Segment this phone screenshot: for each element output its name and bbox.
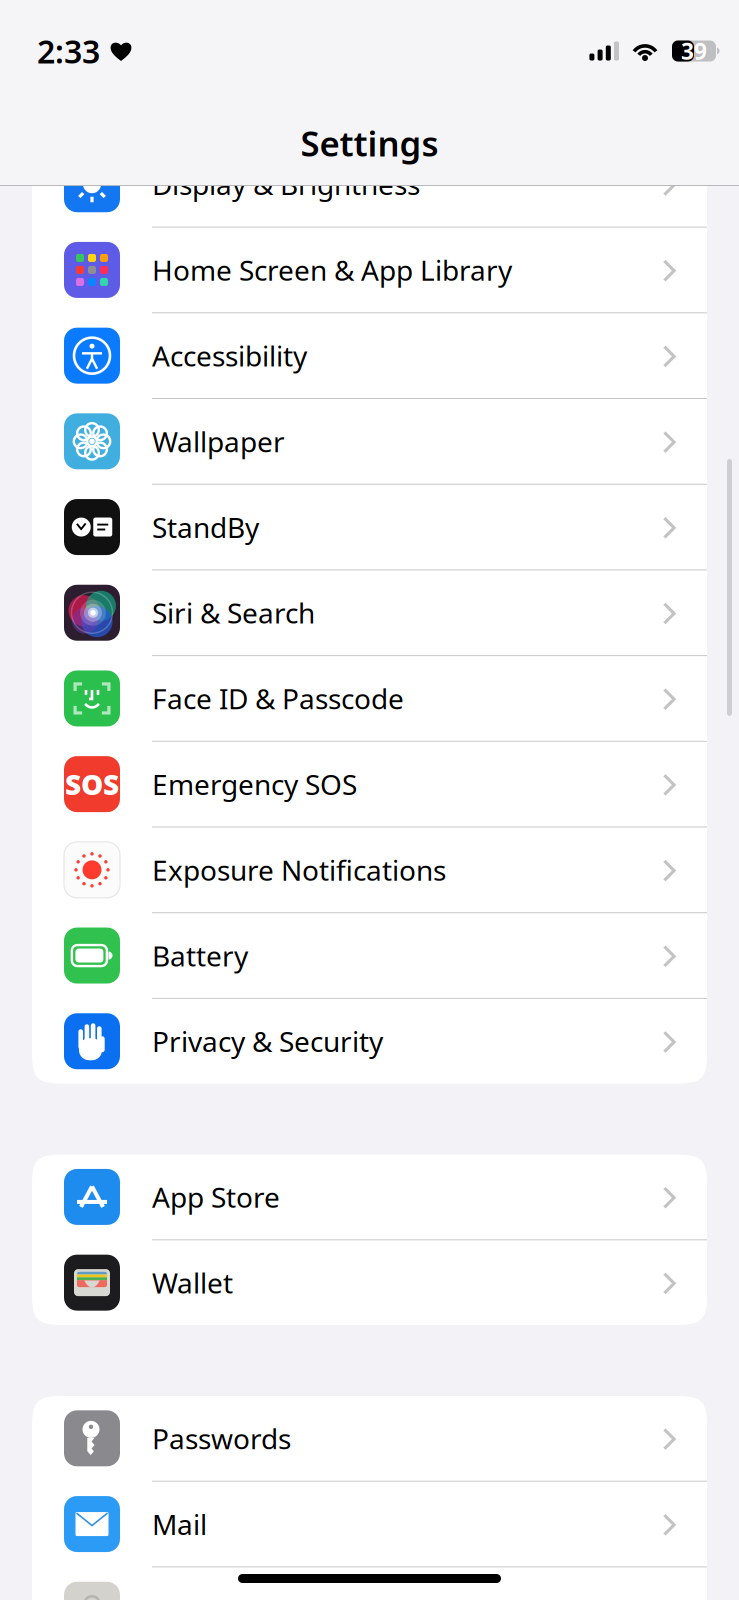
button[interactable]: Passwords bbox=[32, 1396, 707, 1481]
staticText: Home Screen & App Library bbox=[152, 251, 512, 289]
button[interactable]: Siri & Search bbox=[32, 570, 707, 655]
staticText: Siri & Search bbox=[152, 594, 315, 631]
staticText: Display & Brightness bbox=[152, 166, 420, 203]
button[interactable]: Wallet bbox=[32, 1240, 707, 1325]
staticText: Emergency SOS bbox=[152, 766, 357, 803]
staticText: 39 bbox=[681, 36, 707, 66]
button[interactable]: Face ID & Passcode bbox=[32, 656, 707, 741]
button[interactable]: Wallpaper bbox=[32, 399, 707, 484]
button[interactable]: Exposure Notifications bbox=[32, 827, 707, 912]
staticText: Mail bbox=[152, 1505, 207, 1543]
staticText: 2:33 bbox=[37, 30, 100, 72]
button[interactable]: StandBy bbox=[32, 485, 707, 569]
button[interactable]: Home Screen & App Library bbox=[32, 228, 707, 312]
staticText: Wallpaper bbox=[152, 423, 285, 460]
staticText: App Store bbox=[152, 1178, 280, 1216]
button[interactable]: SOS bbox=[32, 742, 707, 826]
staticText: Face ID & Passcode bbox=[152, 680, 404, 717]
button[interactable]: Contacts bbox=[32, 1567, 707, 1600]
staticText: Battery bbox=[152, 937, 248, 974]
staticText: Wallet bbox=[152, 1264, 233, 1301]
staticText: SOS bbox=[65, 766, 119, 803]
staticText: Settings bbox=[300, 120, 438, 166]
button[interactable]: Display & Brightness bbox=[32, 142, 707, 227]
button[interactable]: Privacy & Security bbox=[32, 999, 707, 1084]
staticText: Privacy & Security bbox=[152, 1023, 383, 1060]
button[interactable]: App Store bbox=[32, 1155, 707, 1239]
button[interactable]: Mail bbox=[32, 1482, 707, 1566]
staticText: Exposure Notifications bbox=[152, 851, 446, 888]
button[interactable]: Accessibility bbox=[32, 313, 707, 398]
staticText: Passwords bbox=[152, 1420, 291, 1457]
button[interactable]: Battery bbox=[32, 913, 707, 998]
staticText: Accessibility bbox=[152, 337, 307, 374]
staticText: StandBy bbox=[152, 508, 259, 546]
